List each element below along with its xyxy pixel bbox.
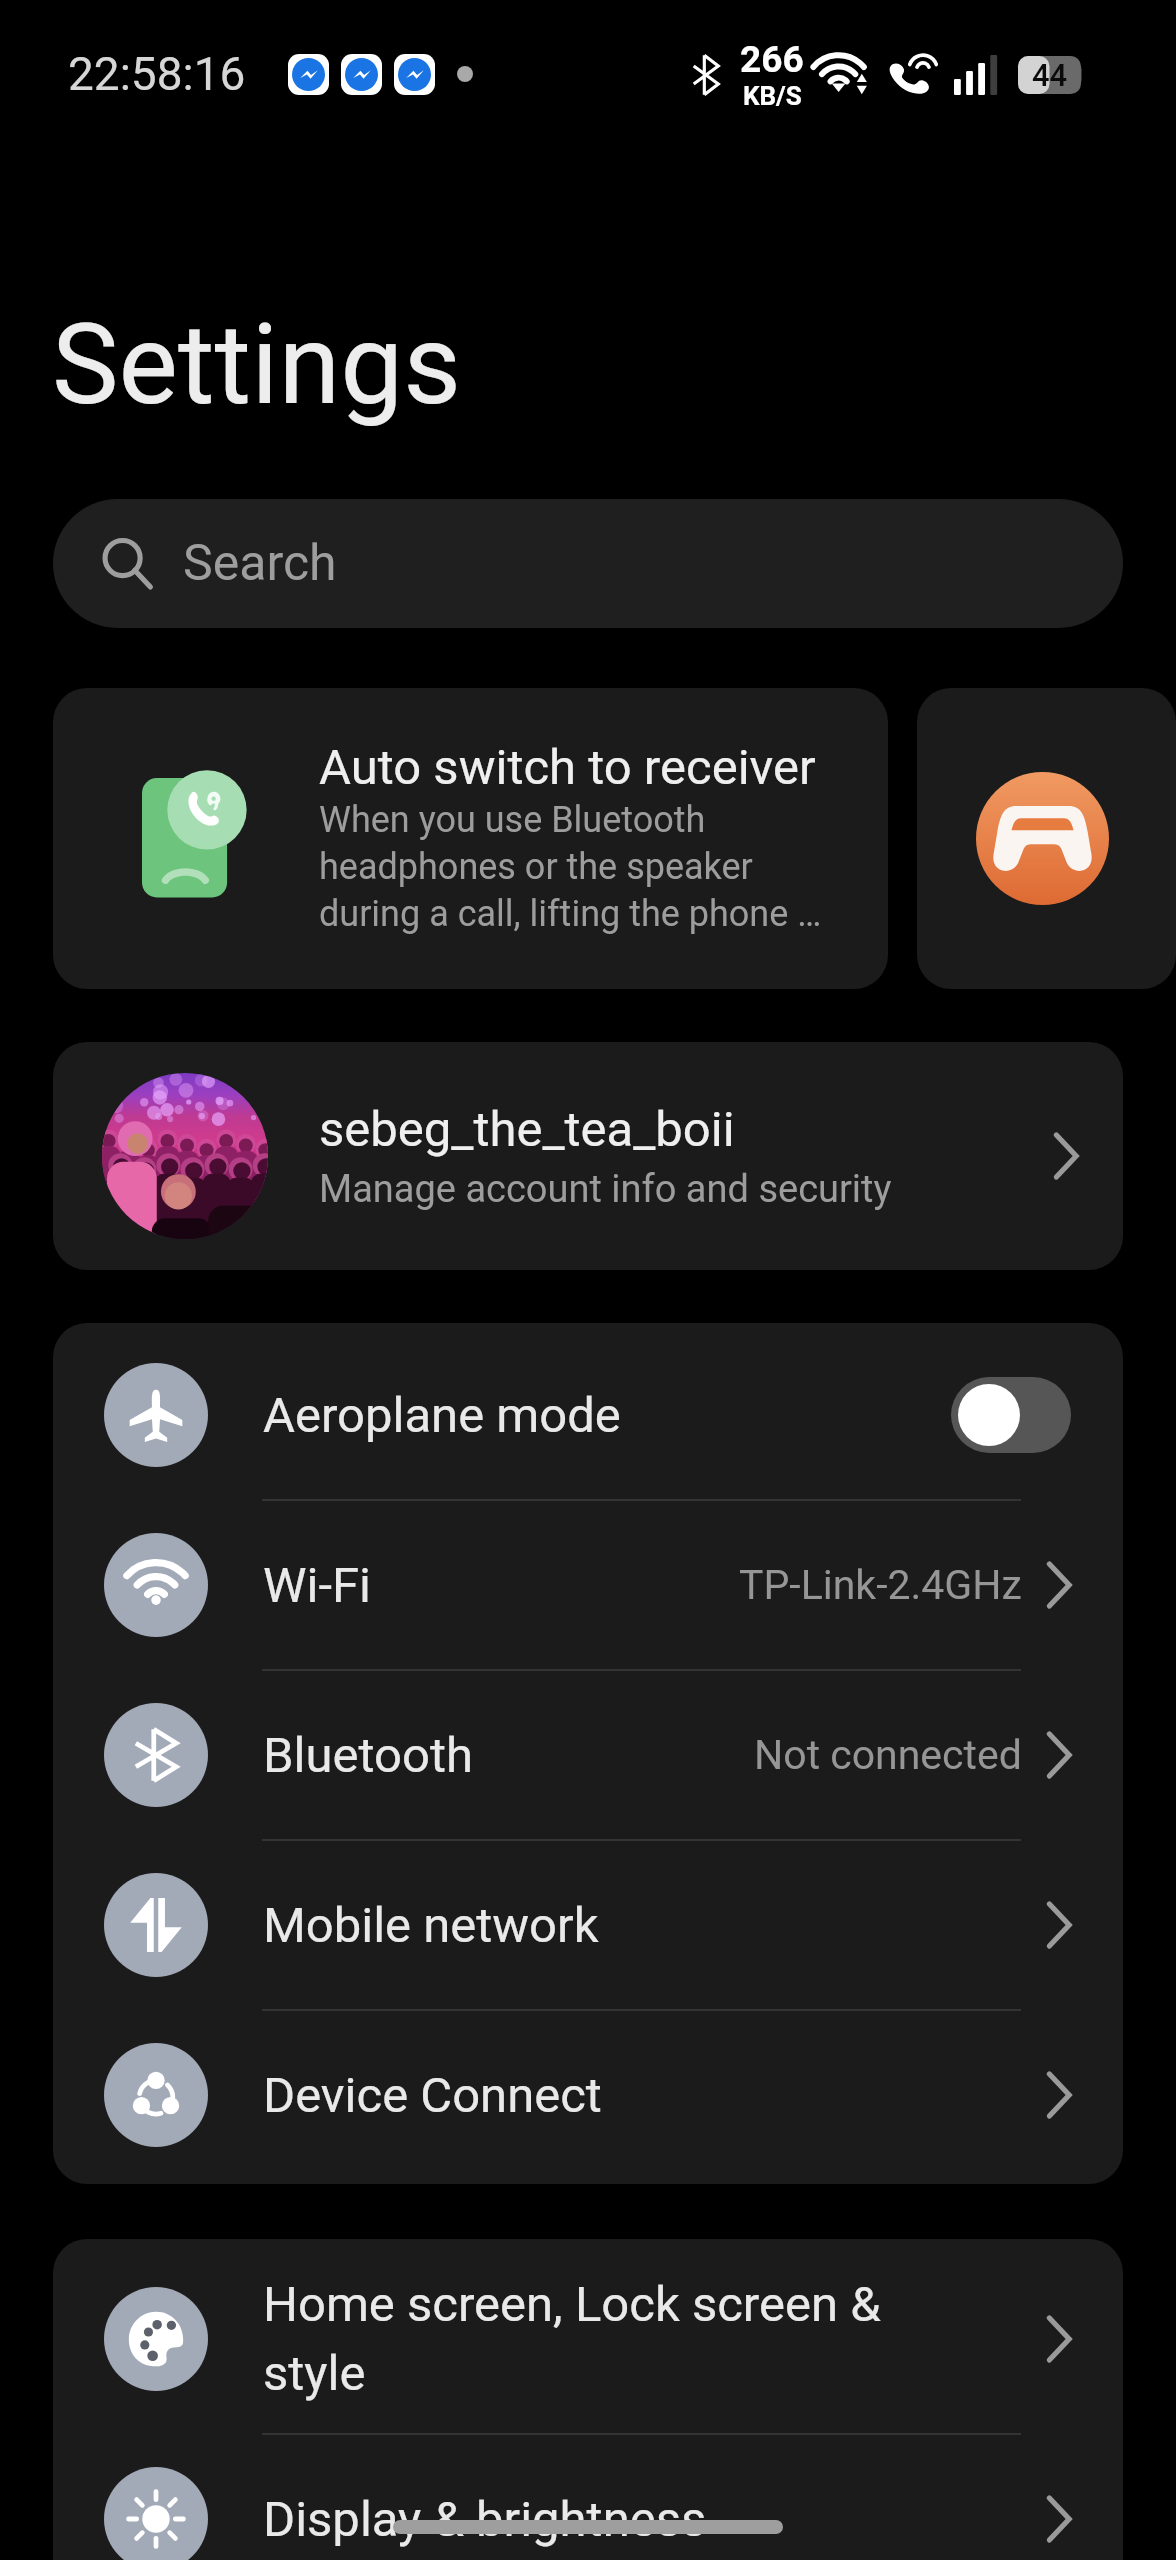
staticText: TP-Link-2.4GHz — [739, 1561, 1022, 1609]
other: Open — [1044, 2313, 1074, 2365]
other: Open — [1044, 1559, 1074, 1611]
staticText: Settings — [52, 299, 461, 430]
staticText: Manage account info and security — [319, 1167, 892, 1212]
staticText: When you use Bluetooth headphones or the… — [319, 799, 822, 935]
button[interactable]: Display & brightness — [53, 2435, 1123, 2560]
staticText: sebeg_the_tea_boii — [319, 1101, 735, 1158]
other: Open — [1051, 1130, 1081, 1182]
button[interactable]: Wi-Fi — [53, 1501, 1123, 1669]
staticText: Mobile network — [263, 1897, 1044, 1954]
button[interactable]: Bluetooth — [53, 1671, 1123, 1839]
staticText: Device Connect — [263, 2067, 1044, 2124]
button[interactable]: sebeg_the_tea_boii — [53, 1042, 1123, 1270]
staticText: KB/S — [743, 81, 802, 111]
staticText: Aeroplane mode — [263, 1387, 951, 1444]
other: Open — [1044, 2493, 1074, 2545]
staticText: 22:58:16 — [68, 47, 246, 101]
button[interactable]: Aeroplane mode — [53, 1331, 1123, 1499]
staticText: Not connected — [754, 1731, 1022, 1779]
other: Open — [1044, 1729, 1074, 1781]
staticText: Display & brightness — [263, 2491, 1044, 2548]
staticText: Bluetooth — [263, 1727, 754, 1784]
other: Open — [1044, 2069, 1074, 2121]
other: Open — [1044, 1899, 1074, 1951]
staticText: 266 — [740, 38, 804, 81]
button[interactable]: Device Connect — [53, 2011, 1123, 2179]
button[interactable] — [917, 688, 1176, 989]
staticText: Search — [183, 534, 337, 593]
button[interactable]: Auto switch to receiver — [53, 688, 888, 989]
staticText: Auto switch to receiver — [319, 739, 816, 796]
button[interactable]: Home screen, Lock screen & style — [53, 2245, 1123, 2433]
button[interactable]: Search — [53, 499, 1123, 628]
other: Battery 44% — [1018, 56, 1088, 94]
button[interactable]: Mobile network — [53, 1841, 1123, 2009]
staticText: Wi-Fi — [263, 1557, 739, 1614]
staticText: Home screen, Lock screen & style — [263, 2276, 903, 2402]
button[interactable]: Aeroplane mode toggle — [951, 1377, 1071, 1453]
staticText: 44 — [1032, 57, 1068, 93]
